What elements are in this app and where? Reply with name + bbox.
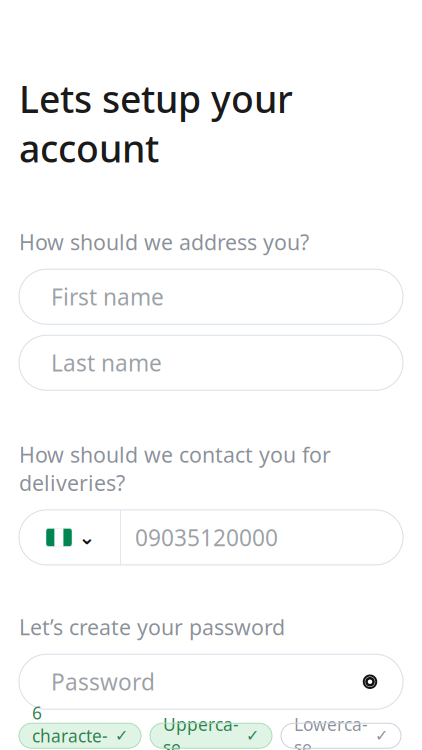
- staticText: ✓: [115, 727, 128, 745]
- staticText: Last name: [51, 348, 162, 378]
- button[interactable]: First name: [19, 269, 403, 324]
- staticText: Let’s create your password: [19, 613, 285, 641]
- staticText: How should we contact you for deliveries…: [19, 440, 331, 497]
- button[interactable]: 09035120000: [121, 510, 403, 565]
- staticText: ⌄: [78, 526, 95, 549]
- staticText: Lets setup your account: [19, 74, 293, 173]
- staticText: Password: [51, 667, 155, 697]
- button[interactable]: Show password: [355, 667, 385, 697]
- staticText: 09035120000: [135, 522, 278, 552]
- button[interactable]: Lowercase: [281, 723, 401, 748]
- button[interactable]: Select country code: [19, 510, 120, 565]
- staticText: How should we address you?: [19, 228, 309, 256]
- staticText: Uppercase: [163, 713, 239, 750]
- button[interactable]: Uppercase: [150, 723, 272, 748]
- staticText: ✓: [246, 727, 259, 745]
- staticText: ✓: [375, 727, 388, 745]
- button[interactable]: 6 characters: [19, 723, 141, 748]
- staticText: First name: [51, 282, 164, 312]
- staticText: Lowercase: [294, 713, 368, 750]
- button[interactable]: Last name: [19, 335, 403, 390]
- staticText: 6 characters: [32, 701, 108, 750]
